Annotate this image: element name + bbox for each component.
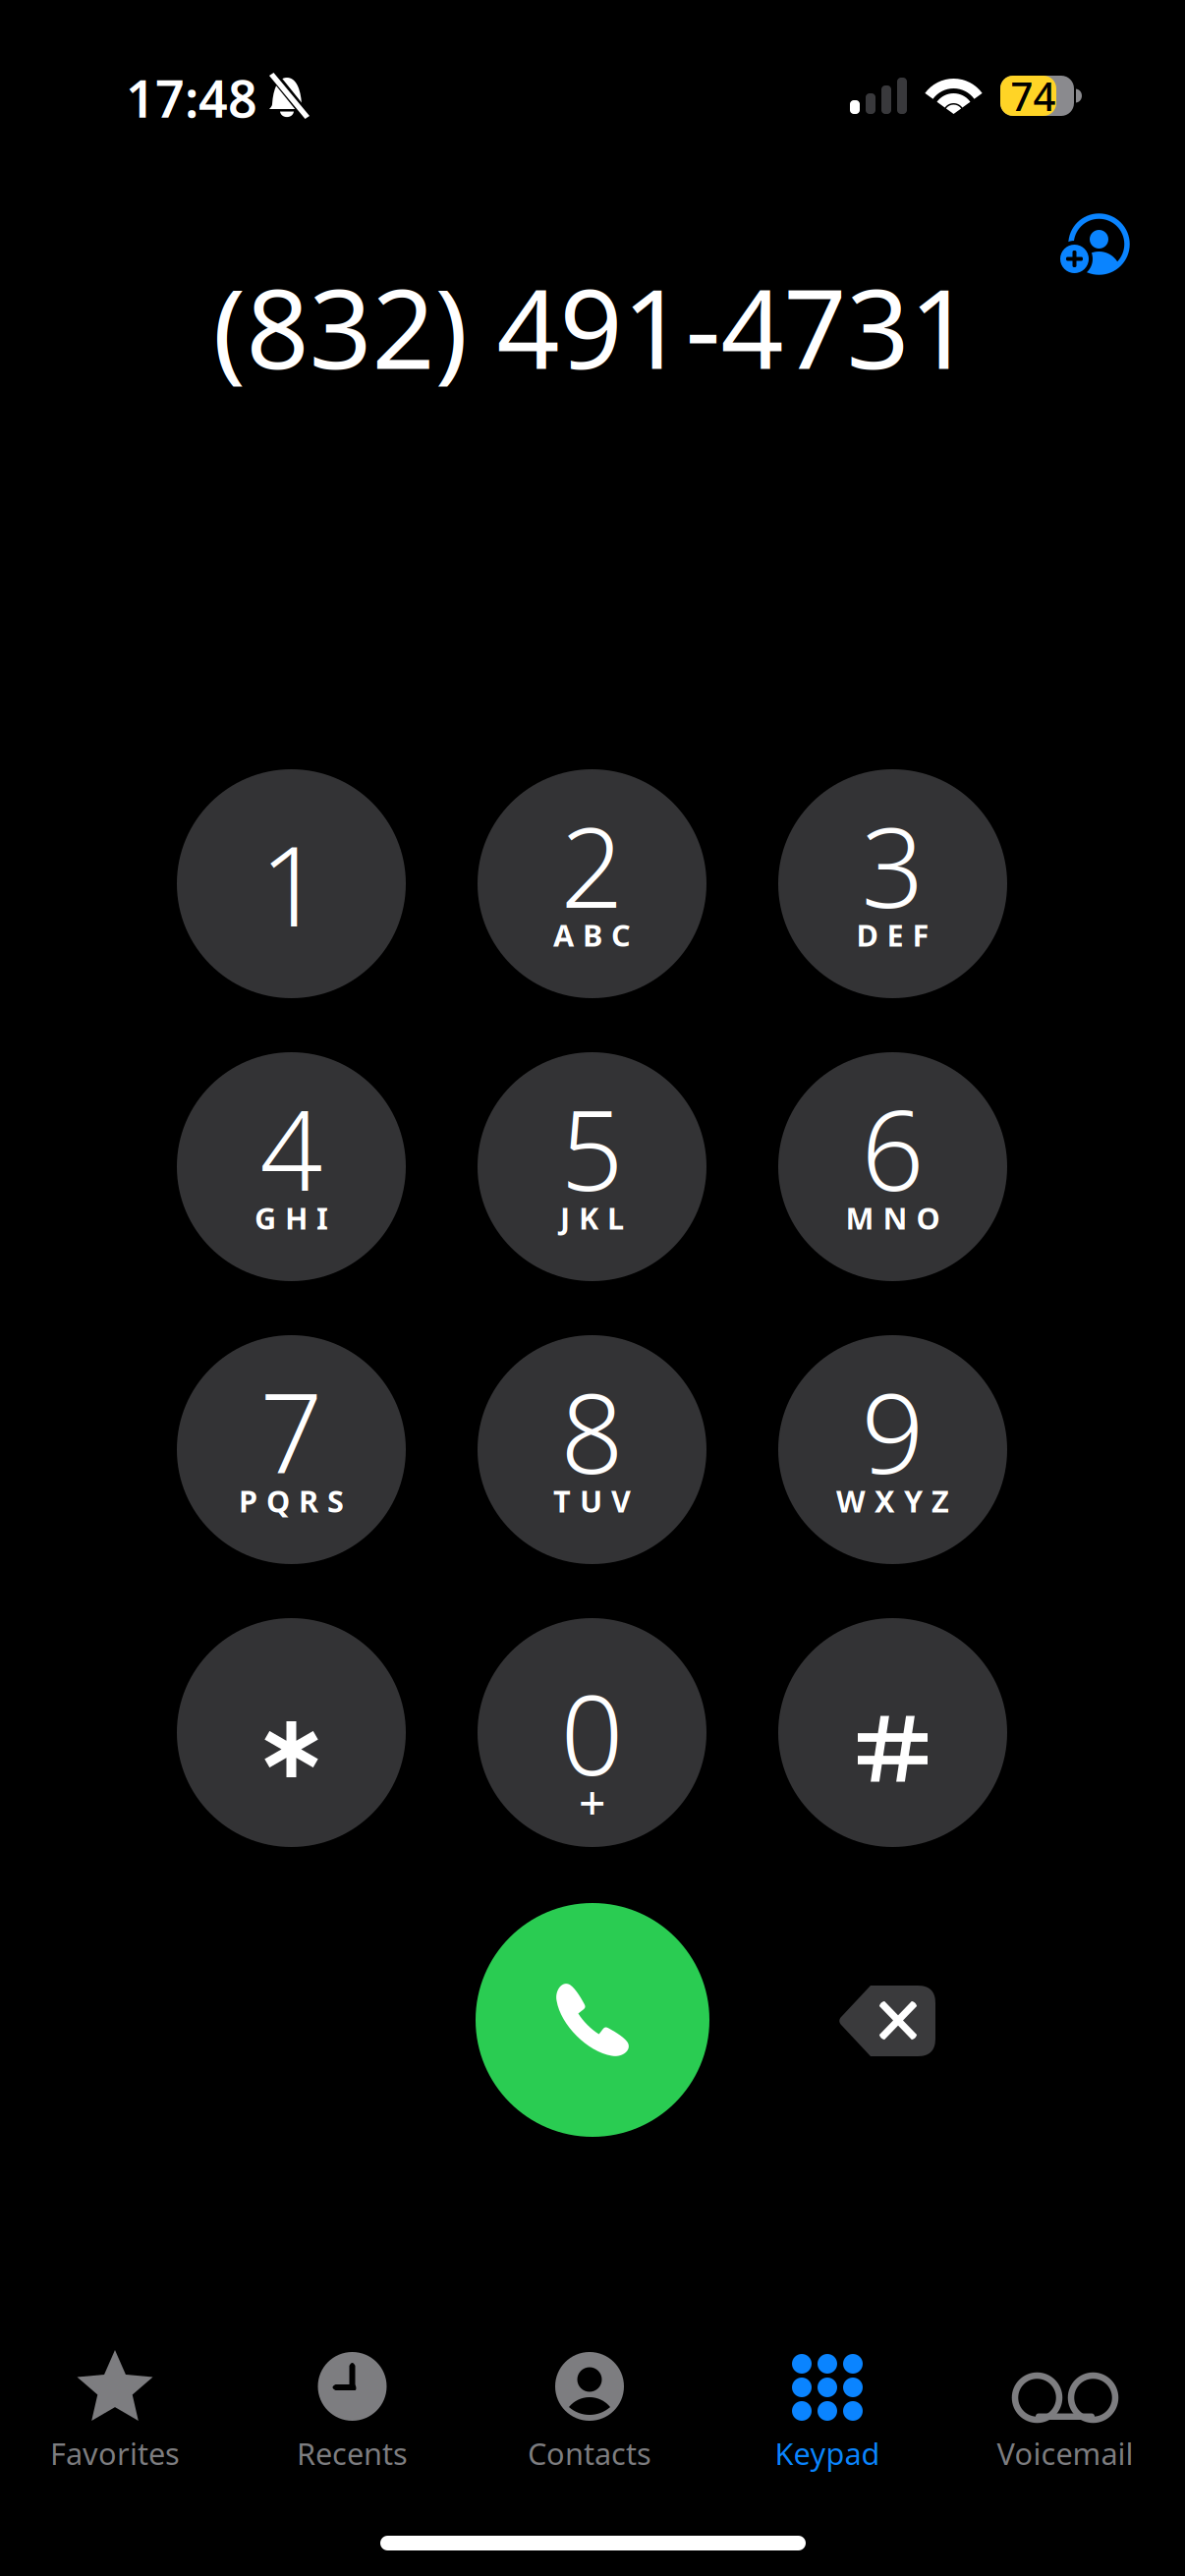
- button[interactable]: 0: [478, 1618, 706, 1847]
- button[interactable]: Add Contact: [1031, 182, 1157, 308]
- staticText: Contacts: [528, 2433, 651, 2473]
- staticText: 17:48: [126, 64, 257, 132]
- button[interactable]: Voicemail: [967, 2342, 1163, 2460]
- staticText: 7: [260, 1358, 323, 1504]
- button[interactable]: [177, 1618, 406, 1847]
- button[interactable]: 3: [778, 769, 1007, 998]
- staticText: 6: [861, 1075, 924, 1221]
- button[interactable]: 9: [778, 1335, 1007, 1564]
- staticText: Favorites: [50, 2433, 180, 2473]
- staticText: JKL: [560, 1198, 624, 1238]
- staticText: 3: [861, 792, 924, 938]
- button[interactable]: Favorites: [17, 2342, 213, 2460]
- staticText: GHI: [254, 1198, 328, 1238]
- staticText: MNO: [846, 1198, 940, 1238]
- staticText: +: [579, 1770, 605, 1833]
- staticText: 0: [561, 1659, 623, 1806]
- button[interactable]: [778, 1618, 1007, 1847]
- staticText: TUV: [553, 1481, 631, 1521]
- button[interactable]: 4: [177, 1052, 406, 1281]
- staticText: WXYZ: [836, 1481, 949, 1521]
- staticText: DEF: [856, 915, 929, 955]
- button[interactable]: 7: [177, 1335, 406, 1564]
- button[interactable]: 5: [478, 1052, 706, 1281]
- button[interactable]: Recents: [254, 2342, 451, 2460]
- staticText: 9: [861, 1358, 924, 1504]
- staticText: (832) 491-4731: [213, 253, 972, 399]
- button[interactable]: 6: [778, 1052, 1007, 1281]
- staticText: 5: [561, 1075, 623, 1221]
- button[interactable]: 2: [478, 769, 706, 998]
- button[interactable]: 8: [478, 1335, 706, 1564]
- button[interactable]: 1: [177, 769, 406, 998]
- staticText: 2: [561, 792, 623, 938]
- button[interactable]: Call: [476, 1903, 709, 2137]
- staticText: 4: [260, 1075, 323, 1221]
- staticText: Recents: [297, 2433, 408, 2473]
- staticText: 74: [1011, 70, 1056, 122]
- staticText: 8: [561, 1358, 623, 1504]
- button[interactable]: Delete: [816, 1963, 958, 2079]
- staticText: Keypad: [775, 2433, 880, 2473]
- staticText: PQRS: [239, 1481, 344, 1521]
- button[interactable]: Keypad: [729, 2342, 926, 2460]
- staticText: 1: [260, 811, 323, 957]
- staticText: Voicemail: [997, 2433, 1133, 2473]
- staticText: ABC: [553, 915, 631, 955]
- button[interactable]: Contacts: [491, 2342, 688, 2460]
